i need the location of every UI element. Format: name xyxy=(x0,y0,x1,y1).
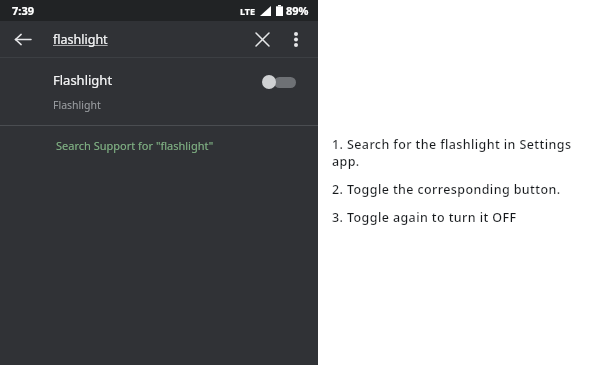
staticText: 3. Toggle again to turn it OFF xyxy=(332,209,517,226)
button[interactable]: flashlight xyxy=(53,31,108,48)
staticText: 1. Search for the flashlight in Settings… xyxy=(332,136,600,170)
staticText: Search Support for "flashlight" xyxy=(56,138,214,153)
button[interactable]: Flashlight toggle xyxy=(262,72,296,92)
staticText: Flashlight xyxy=(53,71,113,89)
button[interactable]: Flashlight xyxy=(0,58,318,125)
button[interactable]: Search Support for "flashlight" xyxy=(0,126,318,164)
button[interactable]: Clear search xyxy=(248,25,276,53)
staticText: Flashlight xyxy=(53,98,101,112)
button[interactable]: Back xyxy=(8,25,36,53)
staticText: LTE xyxy=(240,5,256,17)
staticText: 89% xyxy=(286,3,309,18)
staticText: 7:39 xyxy=(12,3,34,18)
staticText: flashlight xyxy=(53,31,108,48)
staticText: 2. Toggle the corresponding button. xyxy=(332,181,561,198)
button[interactable]: More options xyxy=(282,25,310,53)
